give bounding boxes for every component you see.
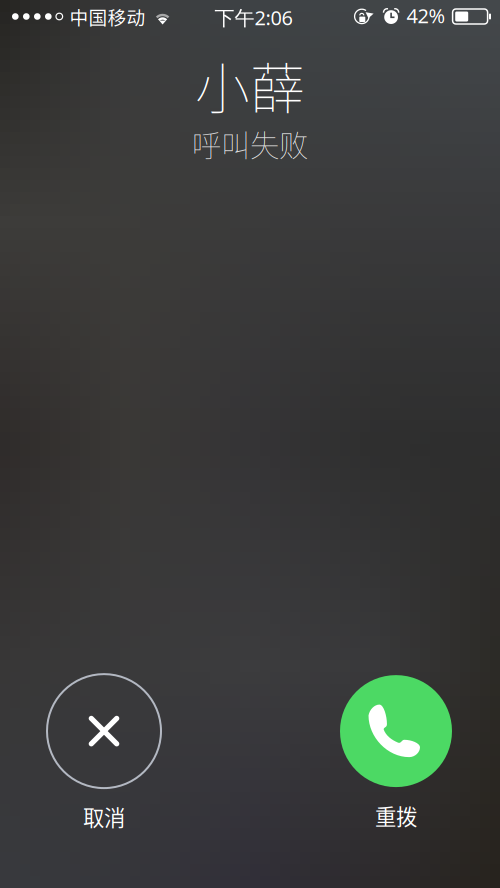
staticText: 小薛: [195, 45, 305, 124]
staticText: 重拨: [375, 800, 417, 831]
staticText: 下午2:06: [214, 4, 292, 31]
staticText: 呼叫失败: [192, 122, 308, 165]
button[interactable]: 重拨: [321, 675, 471, 831]
staticText: 中国移动: [70, 3, 146, 30]
staticText: 42%: [407, 2, 446, 29]
button[interactable]: 取消: [29, 674, 179, 832]
staticText: 取消: [83, 801, 125, 832]
